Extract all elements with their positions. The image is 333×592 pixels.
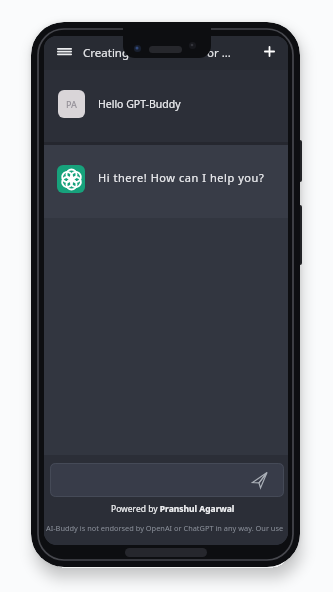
button[interactable]: Hi there! How can I help you? — [44, 145, 288, 218]
button[interactable] — [51, 42, 71, 62]
staticText: Hi there! How can I help you? — [98, 170, 265, 185]
button[interactable] — [260, 42, 278, 60]
staticText: Creating — [83, 45, 130, 61]
staticText: or ... — [207, 45, 231, 61]
staticText: Hello GPT-Buddy — [98, 97, 181, 111]
button[interactable]: PA — [44, 70, 288, 142]
staticText: AI-Buddy is not endorsed by OpenAI or Ch… — [46, 523, 288, 533]
button[interactable] — [50, 463, 284, 497]
staticText: PA — [66, 98, 77, 110]
staticText: Powered by Pranshul Agarwal — [111, 503, 235, 515]
button[interactable] — [247, 467, 273, 493]
